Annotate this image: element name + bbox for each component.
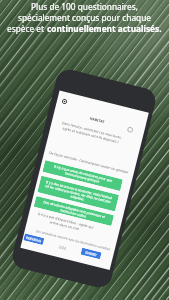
button[interactable]: Des structures adaptées sont présentes e…	[34, 196, 114, 226]
staticText: Plus de 100 questionnaires,	[31, 1, 138, 12]
staticText: De façon verticale - l'animal peut saute…	[49, 150, 129, 175]
staticText: spécialement conçus pour chaque	[18, 12, 151, 23]
button[interactable]: Il n'y a pas assez de structures pour qu…	[42, 160, 123, 191]
staticText: espèce et	[7, 23, 47, 34]
staticText: J'ai constaté et mesuré avec les illustr…	[35, 229, 111, 251]
button[interactable]: SUBMIT	[80, 248, 102, 259]
staticText: SUBMIT	[85, 250, 98, 257]
staticText: PREVIOUS	[25, 236, 42, 244]
staticText: 2/22	[58, 244, 67, 251]
staticText: Des structures adaptées sont présentes e…	[38, 199, 110, 224]
button[interactable]: Il y a des structures à escalader, mais …	[37, 176, 119, 211]
button[interactable]: Settings	[61, 98, 68, 105]
button[interactable]: PREVIOUS	[23, 233, 44, 245]
staticText: HABITAT	[89, 116, 106, 124]
staticText: continuellement actualisés.	[47, 23, 162, 34]
button[interactable]: Help	[126, 126, 134, 133]
staticText: Il n'y a pas assez de structures pour qu…	[47, 163, 119, 188]
staticText: Il n'y a pas d'espace libre - agrès qui …	[31, 210, 99, 236]
staticText: Dans l'enclos, comment ces structures, a…	[57, 119, 126, 145]
staticText: Il y a des structures à escalader, mais …	[42, 179, 114, 209]
